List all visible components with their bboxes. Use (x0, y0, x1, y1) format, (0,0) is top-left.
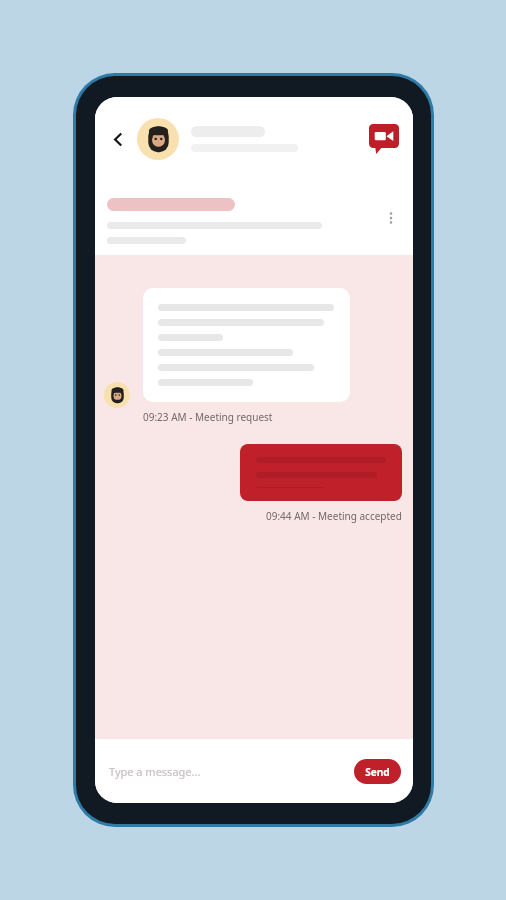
button[interactable]: More options (377, 204, 405, 232)
staticText: 09:44 AM - Meeting accepted (266, 509, 402, 523)
button[interactable] (240, 444, 402, 501)
button[interactable]: Video call (364, 119, 404, 159)
button[interactable]: Back (102, 123, 134, 155)
button[interactable]: More options (95, 181, 413, 255)
button[interactable]: Contact profile (137, 118, 179, 160)
staticText: 09:23 AM - Meeting request (143, 410, 273, 424)
button[interactable] (143, 288, 350, 402)
staticText: Type a message... (109, 764, 201, 779)
button[interactable]: Send (354, 759, 401, 784)
staticText: Send (365, 765, 390, 779)
button[interactable]: Type a message... (95, 764, 354, 779)
